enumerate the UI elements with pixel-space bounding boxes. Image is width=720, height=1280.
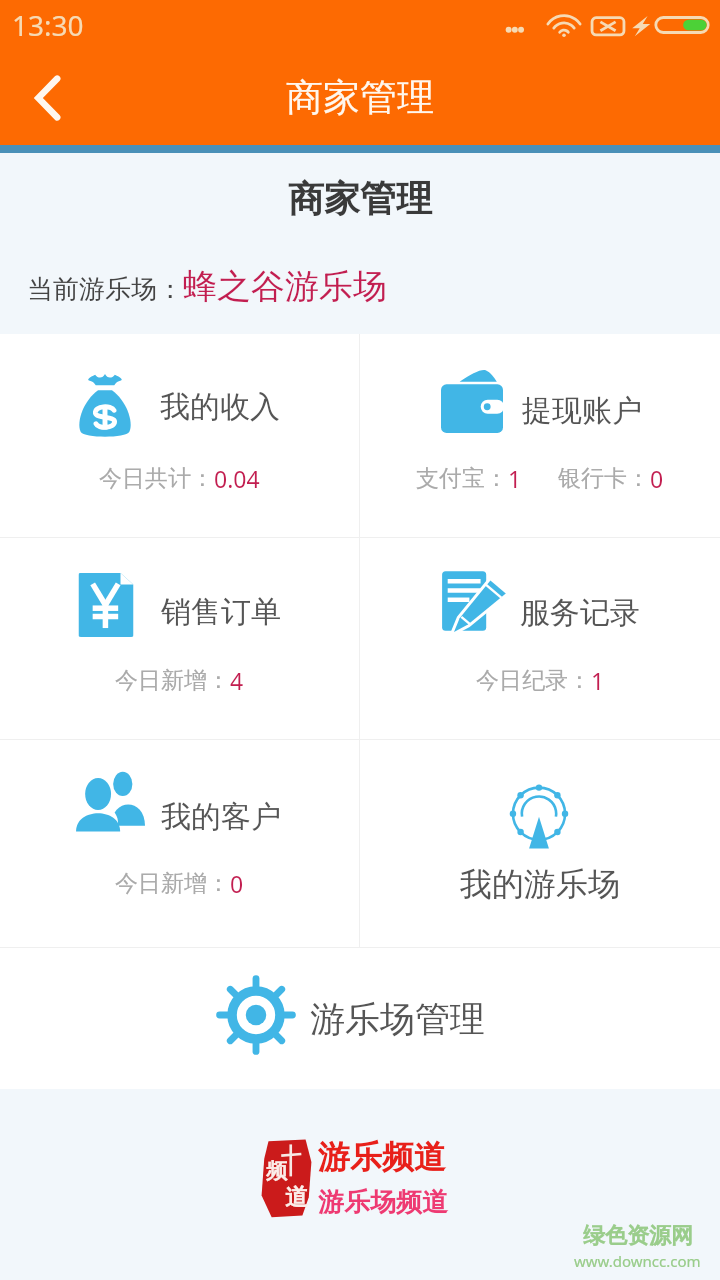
staticText: 1: [591, 665, 605, 696]
staticText: 道: [285, 1183, 308, 1212]
button[interactable]: 我的游乐场: [360, 740, 720, 947]
staticText: 今日纪录：: [476, 666, 591, 695]
staticText: 商家管理: [0, 176, 720, 221]
staticText: 游乐频道: [318, 1137, 446, 1177]
staticText: 商家管理: [286, 74, 434, 121]
button[interactable]: 我的收入: [0, 334, 359, 537]
staticText: 游乐场频道: [318, 1186, 448, 1219]
staticText: 1: [508, 463, 522, 494]
button[interactable]: 服务记录: [360, 538, 720, 739]
staticText: 频: [266, 1158, 287, 1184]
staticText: 银行卡：: [558, 464, 650, 493]
button[interactable]: Back: [0, 50, 95, 145]
staticText: 今日新增：: [115, 869, 230, 898]
staticText: 0.04: [214, 463, 260, 494]
staticText: 今日新增：: [115, 666, 230, 695]
button[interactable]: 游乐场管理: [0, 948, 720, 1089]
button[interactable]: 销售订单: [0, 538, 359, 739]
staticText: 服务记录: [520, 594, 640, 632]
staticText: 销售订单: [161, 593, 281, 631]
staticText: 当前游乐场：: [27, 273, 183, 306]
staticText: www.downcc.com: [574, 1251, 701, 1271]
button[interactable]: 我的客户: [0, 740, 359, 947]
staticText: 游乐场管理: [310, 997, 485, 1041]
staticText: 我的游乐场: [460, 864, 620, 904]
staticText: 绿色资源网: [583, 1222, 693, 1250]
staticText: 蜂之谷游乐场: [183, 265, 387, 308]
staticText: 0: [230, 868, 244, 899]
staticText: 我的收入: [160, 388, 280, 426]
staticText: 支付宝：: [416, 464, 508, 493]
button[interactable]: 提现账户: [360, 334, 720, 537]
staticText: 我的客户: [161, 798, 281, 836]
staticText: 今日共计：: [99, 464, 214, 493]
staticText: 13:30: [12, 6, 84, 44]
staticText: 0: [650, 463, 664, 494]
staticText: 提现账户: [522, 392, 642, 430]
staticText: 4: [230, 665, 244, 696]
